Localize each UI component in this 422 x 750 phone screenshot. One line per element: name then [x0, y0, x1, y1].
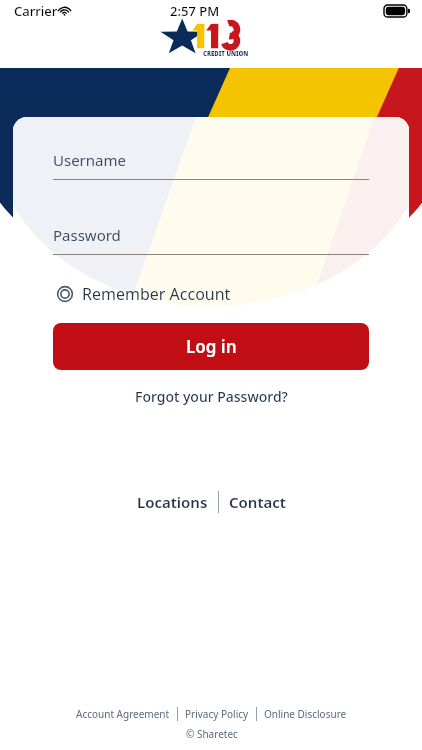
button[interactable]: Contact	[219, 487, 296, 517]
staticText: Privacy Policy	[185, 707, 249, 721]
staticText: Log in	[186, 335, 237, 358]
staticText: Password	[53, 225, 121, 245]
staticText: Remember Account	[82, 283, 231, 305]
button[interactable]: Privacy Policy	[178, 704, 256, 724]
button[interactable]: Password	[53, 225, 369, 255]
button[interactable]: Log in	[53, 323, 369, 370]
staticText: Username	[53, 150, 126, 170]
staticText: Contact	[229, 492, 286, 512]
button[interactable]: Locations	[127, 487, 218, 517]
button[interactable]: Username	[53, 150, 369, 180]
button[interactable]: Forgot your Password?	[13, 384, 409, 409]
button[interactable]: Remember Account	[53, 277, 235, 311]
button[interactable]: Online Disclosure	[257, 704, 354, 724]
staticText: Forgot your Password?	[135, 387, 288, 406]
staticText: Account Agreement	[76, 707, 170, 721]
staticText: © Sharetec	[186, 727, 238, 741]
staticText: Carrier	[14, 2, 58, 20]
staticText: 2:57 PM	[170, 2, 220, 20]
staticText: CREDIT UNION	[203, 50, 249, 58]
button[interactable]: Account Agreement	[69, 704, 177, 724]
staticText: Online Disclosure	[264, 707, 347, 721]
staticText: Locations	[137, 492, 208, 512]
